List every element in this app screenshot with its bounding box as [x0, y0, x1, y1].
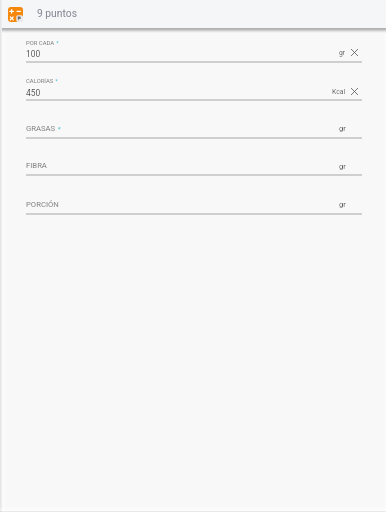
staticText: PORCIÓN: [26, 200, 59, 209]
staticText: 450: [26, 88, 41, 98]
button[interactable]: GRASAS *: [0, 100, 386, 139]
staticText: Kcal: [332, 88, 346, 96]
staticText: 100: [26, 49, 41, 59]
staticText: GRASAS *: [26, 124, 61, 133]
staticText: gr: [339, 162, 346, 171]
button[interactable]: PORCIÓN: [0, 176, 386, 215]
staticText: gr: [339, 124, 346, 133]
staticText: 9 puntos: [37, 7, 77, 19]
button[interactable]: POR CADA *: [0, 28, 386, 63]
button[interactable]: FIBRA: [0, 137, 386, 176]
button[interactable]: App icon: [8, 7, 23, 22]
staticText: CALORÍAS *: [26, 78, 58, 85]
staticText: POR CADA *: [26, 40, 59, 47]
button[interactable]: Clear: [346, 44, 363, 61]
staticText: gr: [339, 49, 346, 57]
button[interactable]: Clear: [346, 83, 363, 100]
staticText: gr: [339, 200, 346, 209]
button[interactable]: CALORÍAS *: [0, 62, 386, 101]
staticText: FIBRA: [26, 161, 47, 170]
